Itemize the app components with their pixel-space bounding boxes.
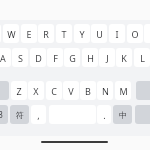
button[interactable]: O — [127, 24, 143, 43]
staticText: V — [68, 85, 74, 97]
staticText: K — [121, 52, 127, 64]
staticText: W — [7, 28, 16, 40]
button[interactable]: K — [116, 48, 132, 67]
button[interactable]: S — [12, 48, 28, 67]
button[interactable]: U — [91, 24, 107, 43]
staticText: L — [140, 52, 145, 64]
staticText: U — [96, 28, 103, 40]
button[interactable]: . — [97, 105, 111, 124]
staticText: I — [115, 28, 119, 40]
button[interactable]: J — [99, 48, 115, 67]
button[interactable]: D — [30, 48, 46, 67]
staticText: 符 — [16, 110, 24, 120]
staticText: R — [43, 28, 49, 40]
button[interactable]: C — [46, 81, 62, 100]
button[interactable]: B — [80, 81, 96, 100]
button[interactable]: V — [63, 81, 79, 100]
staticText: S — [18, 52, 23, 64]
staticText: Z — [16, 85, 22, 97]
staticText: H — [87, 52, 94, 64]
staticText: G — [69, 52, 76, 64]
button[interactable]: Q — [0, 24, 1, 43]
staticText: O — [131, 28, 139, 40]
button[interactable]: F — [47, 48, 63, 67]
staticText: E — [26, 28, 32, 40]
button[interactable] — [0, 81, 9, 100]
staticText: Y — [79, 28, 85, 40]
staticText: 3 — [0, 109, 3, 120]
staticText: 中 — [119, 110, 127, 120]
button[interactable]: H — [82, 48, 98, 67]
staticText: J — [106, 52, 109, 64]
button[interactable]: L — [134, 48, 150, 67]
button[interactable]: M — [115, 81, 131, 100]
button[interactable]: 符 — [10, 105, 29, 124]
staticText: D — [35, 52, 42, 64]
button[interactable]: W — [3, 24, 19, 43]
button[interactable]: 3 — [0, 105, 8, 124]
staticText: B — [85, 85, 91, 97]
staticText: N — [102, 85, 109, 97]
staticText: T — [61, 28, 67, 40]
button[interactable]: E — [21, 24, 37, 43]
button[interactable]: T — [56, 24, 72, 43]
staticText: A — [0, 52, 6, 64]
button[interactable]: R — [38, 24, 54, 43]
button[interactable]: , — [31, 105, 46, 124]
staticText: X — [33, 85, 39, 97]
staticText: F — [53, 52, 58, 64]
button[interactable]: G — [64, 48, 80, 67]
button[interactable]: 中 — [113, 105, 132, 124]
button[interactable]: I — [109, 24, 125, 43]
staticText: , — [37, 109, 40, 121]
button[interactable]: X — [28, 81, 44, 100]
button[interactable]: A — [0, 48, 11, 67]
button[interactable]: Y — [74, 24, 90, 43]
staticText: M — [119, 85, 128, 97]
button[interactable]: Z — [11, 81, 27, 100]
button[interactable]: N — [97, 81, 113, 100]
staticText: C — [51, 85, 57, 97]
staticText: . — [103, 109, 106, 121]
